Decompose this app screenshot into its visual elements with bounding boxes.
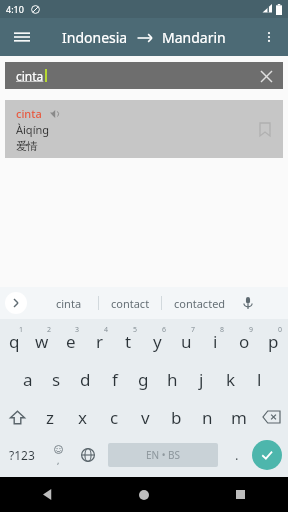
button[interactable]: Bookmark bbox=[254, 118, 276, 140]
button[interactable]: . bbox=[222, 440, 252, 470]
button[interactable]: EN • BS bbox=[108, 443, 218, 467]
staticText: ?123 bbox=[9, 447, 35, 463]
button[interactable]: h bbox=[158, 360, 187, 398]
staticText: k bbox=[226, 368, 236, 391]
staticText: l bbox=[257, 368, 262, 391]
button[interactable]: Back bbox=[0, 477, 96, 512]
button[interactable]: v bbox=[130, 398, 161, 436]
staticText: , bbox=[57, 454, 60, 466]
button[interactable]: q bbox=[0, 322, 28, 360]
button[interactable]: d bbox=[71, 360, 100, 398]
button[interactable]: Shift bbox=[0, 398, 34, 436]
staticText: 2 bbox=[47, 325, 52, 335]
button[interactable]: w bbox=[28, 322, 56, 360]
button[interactable]: u bbox=[172, 322, 201, 360]
staticText: . bbox=[235, 446, 239, 464]
staticText: g bbox=[138, 368, 149, 391]
staticText: b bbox=[171, 406, 182, 429]
staticText: a bbox=[23, 368, 33, 391]
staticText: c bbox=[110, 406, 119, 429]
staticText: 7 bbox=[191, 325, 196, 335]
staticText: m bbox=[231, 406, 247, 429]
staticText: contact bbox=[111, 296, 150, 311]
button[interactable]: ?123 bbox=[0, 440, 44, 470]
staticText: e bbox=[66, 330, 76, 353]
staticText: 爱情 bbox=[16, 139, 38, 153]
button[interactable]: Home bbox=[96, 477, 192, 512]
button[interactable]: Backspace bbox=[254, 398, 288, 436]
staticText: q bbox=[9, 330, 20, 353]
staticText: 6 bbox=[162, 325, 167, 335]
staticText: 1 bbox=[19, 325, 24, 335]
button[interactable]: Open navigation menu bbox=[8, 23, 36, 51]
button[interactable]: p bbox=[259, 322, 288, 360]
staticText: Mandarin bbox=[162, 28, 226, 47]
staticText: p bbox=[268, 330, 279, 353]
staticText: u bbox=[181, 330, 192, 353]
button[interactable]: a bbox=[14, 360, 42, 398]
staticText: w bbox=[35, 330, 49, 353]
staticText: Àiqíng bbox=[16, 122, 50, 137]
staticText: z bbox=[46, 406, 54, 429]
button[interactable]: Recent apps bbox=[192, 477, 288, 512]
staticText: i bbox=[213, 330, 218, 353]
staticText: y bbox=[153, 330, 162, 353]
staticText: cinta bbox=[16, 68, 44, 84]
button[interactable]: contact bbox=[99, 287, 161, 319]
button[interactable]: Voice input bbox=[237, 292, 259, 314]
staticText: 8 bbox=[220, 325, 225, 335]
button[interactable]: r bbox=[85, 322, 114, 360]
button[interactable]: z bbox=[34, 398, 66, 436]
button[interactable]: cinta bbox=[5, 100, 283, 158]
button[interactable]: More suggestions bbox=[5, 292, 27, 314]
staticText: 4:10 bbox=[6, 3, 24, 15]
button[interactable]: Clear search bbox=[257, 67, 275, 85]
button[interactable]: contacted bbox=[162, 287, 237, 319]
button[interactable]: l bbox=[245, 360, 274, 398]
button[interactable]: cinta bbox=[40, 287, 98, 319]
staticText: o bbox=[239, 330, 250, 353]
button[interactable]: m bbox=[223, 398, 254, 436]
button[interactable]: Change language bbox=[72, 440, 104, 470]
button[interactable]: e bbox=[56, 322, 85, 360]
staticText: r bbox=[96, 330, 104, 353]
staticText: 0 bbox=[278, 325, 283, 335]
button[interactable]: b bbox=[161, 398, 192, 436]
staticText: 4 bbox=[104, 325, 109, 335]
button[interactable]: i bbox=[201, 322, 230, 360]
button[interactable]: x bbox=[66, 398, 98, 436]
button[interactable]: o bbox=[230, 322, 259, 360]
button[interactable]: y bbox=[143, 322, 172, 360]
staticText: h bbox=[167, 368, 178, 391]
staticText: x bbox=[78, 406, 87, 429]
button[interactable]: f bbox=[100, 360, 129, 398]
staticText: cinta bbox=[56, 296, 82, 311]
staticText: t bbox=[125, 330, 132, 353]
staticText: cinta bbox=[16, 106, 42, 121]
button[interactable]: s bbox=[42, 360, 71, 398]
staticText: v bbox=[141, 406, 150, 429]
button[interactable]: Emoji and comma bbox=[44, 440, 72, 470]
button[interactable]: n bbox=[192, 398, 223, 436]
staticText: n bbox=[202, 406, 213, 429]
staticText: EN • BS bbox=[146, 448, 181, 462]
button[interactable]: Done bbox=[252, 440, 282, 470]
staticText: j bbox=[199, 368, 204, 391]
button[interactable]: Indonesia bbox=[62, 28, 226, 47]
button[interactable]: g bbox=[129, 360, 158, 398]
staticText: 9 bbox=[249, 325, 254, 335]
button[interactable]: Play pronunciation bbox=[48, 107, 61, 120]
staticText: f bbox=[112, 368, 118, 391]
staticText: s bbox=[52, 368, 61, 391]
button[interactable]: More options bbox=[256, 24, 282, 50]
button[interactable]: k bbox=[216, 360, 245, 398]
staticText: Indonesia bbox=[62, 28, 128, 47]
button[interactable]: cinta bbox=[5, 62, 283, 89]
staticText: contacted bbox=[174, 296, 226, 311]
button[interactable]: t bbox=[114, 322, 143, 360]
staticText: d bbox=[80, 368, 91, 391]
button[interactable]: j bbox=[187, 360, 216, 398]
staticText: 3 bbox=[75, 325, 80, 335]
button[interactable]: c bbox=[98, 398, 130, 436]
staticText: 5 bbox=[133, 325, 138, 335]
